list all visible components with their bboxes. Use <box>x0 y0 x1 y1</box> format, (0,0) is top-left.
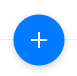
button[interactable]: Add <box>13 14 64 65</box>
